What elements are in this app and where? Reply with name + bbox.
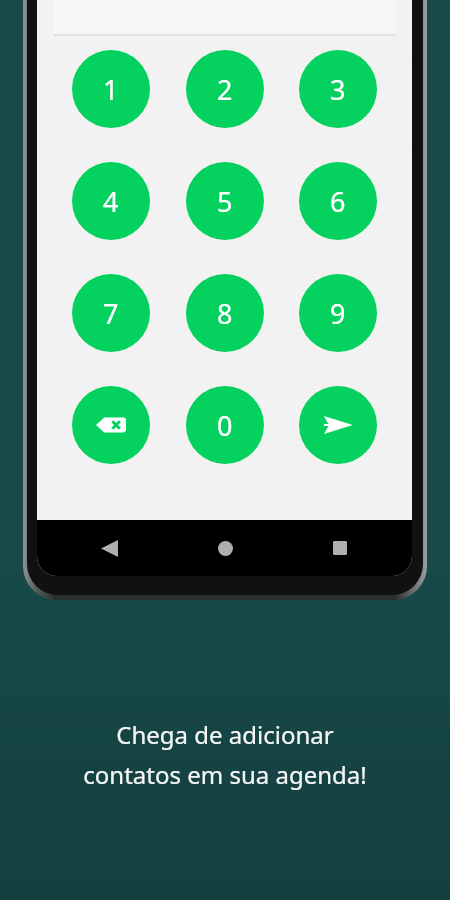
staticText: 7 [103,295,119,332]
button[interactable]: 2 [186,50,264,128]
staticText: 2 [217,71,233,108]
button[interactable]: 8 [186,274,264,352]
staticText: 0 [217,407,233,444]
button[interactable]: 1 [72,50,150,128]
button[interactable]: 6 [299,162,377,240]
button[interactable]: Recent apps [320,528,360,568]
staticText: Chega de adicionar [116,718,334,751]
button[interactable]: Back [89,528,129,568]
button[interactable]: 7 [72,274,150,352]
button[interactable]: 4 [72,162,150,240]
staticText: 5 [217,183,233,220]
staticText: 1 [103,71,119,108]
staticText: 6 [330,183,346,220]
staticText: 8 [217,295,233,332]
button[interactable]: Home [205,528,245,568]
staticText: 9 [330,295,346,332]
button[interactable] [54,0,395,36]
staticText: 4 [103,183,119,220]
button[interactable]: 0 [186,386,264,464]
staticText: 3 [330,71,346,108]
button[interactable]: Call [299,386,377,464]
button[interactable]: 5 [186,162,264,240]
staticText: contatos em sua agenda! [83,758,367,791]
button[interactable]: 3 [299,50,377,128]
button[interactable]: Backspace [72,386,150,464]
button[interactable]: 9 [299,274,377,352]
